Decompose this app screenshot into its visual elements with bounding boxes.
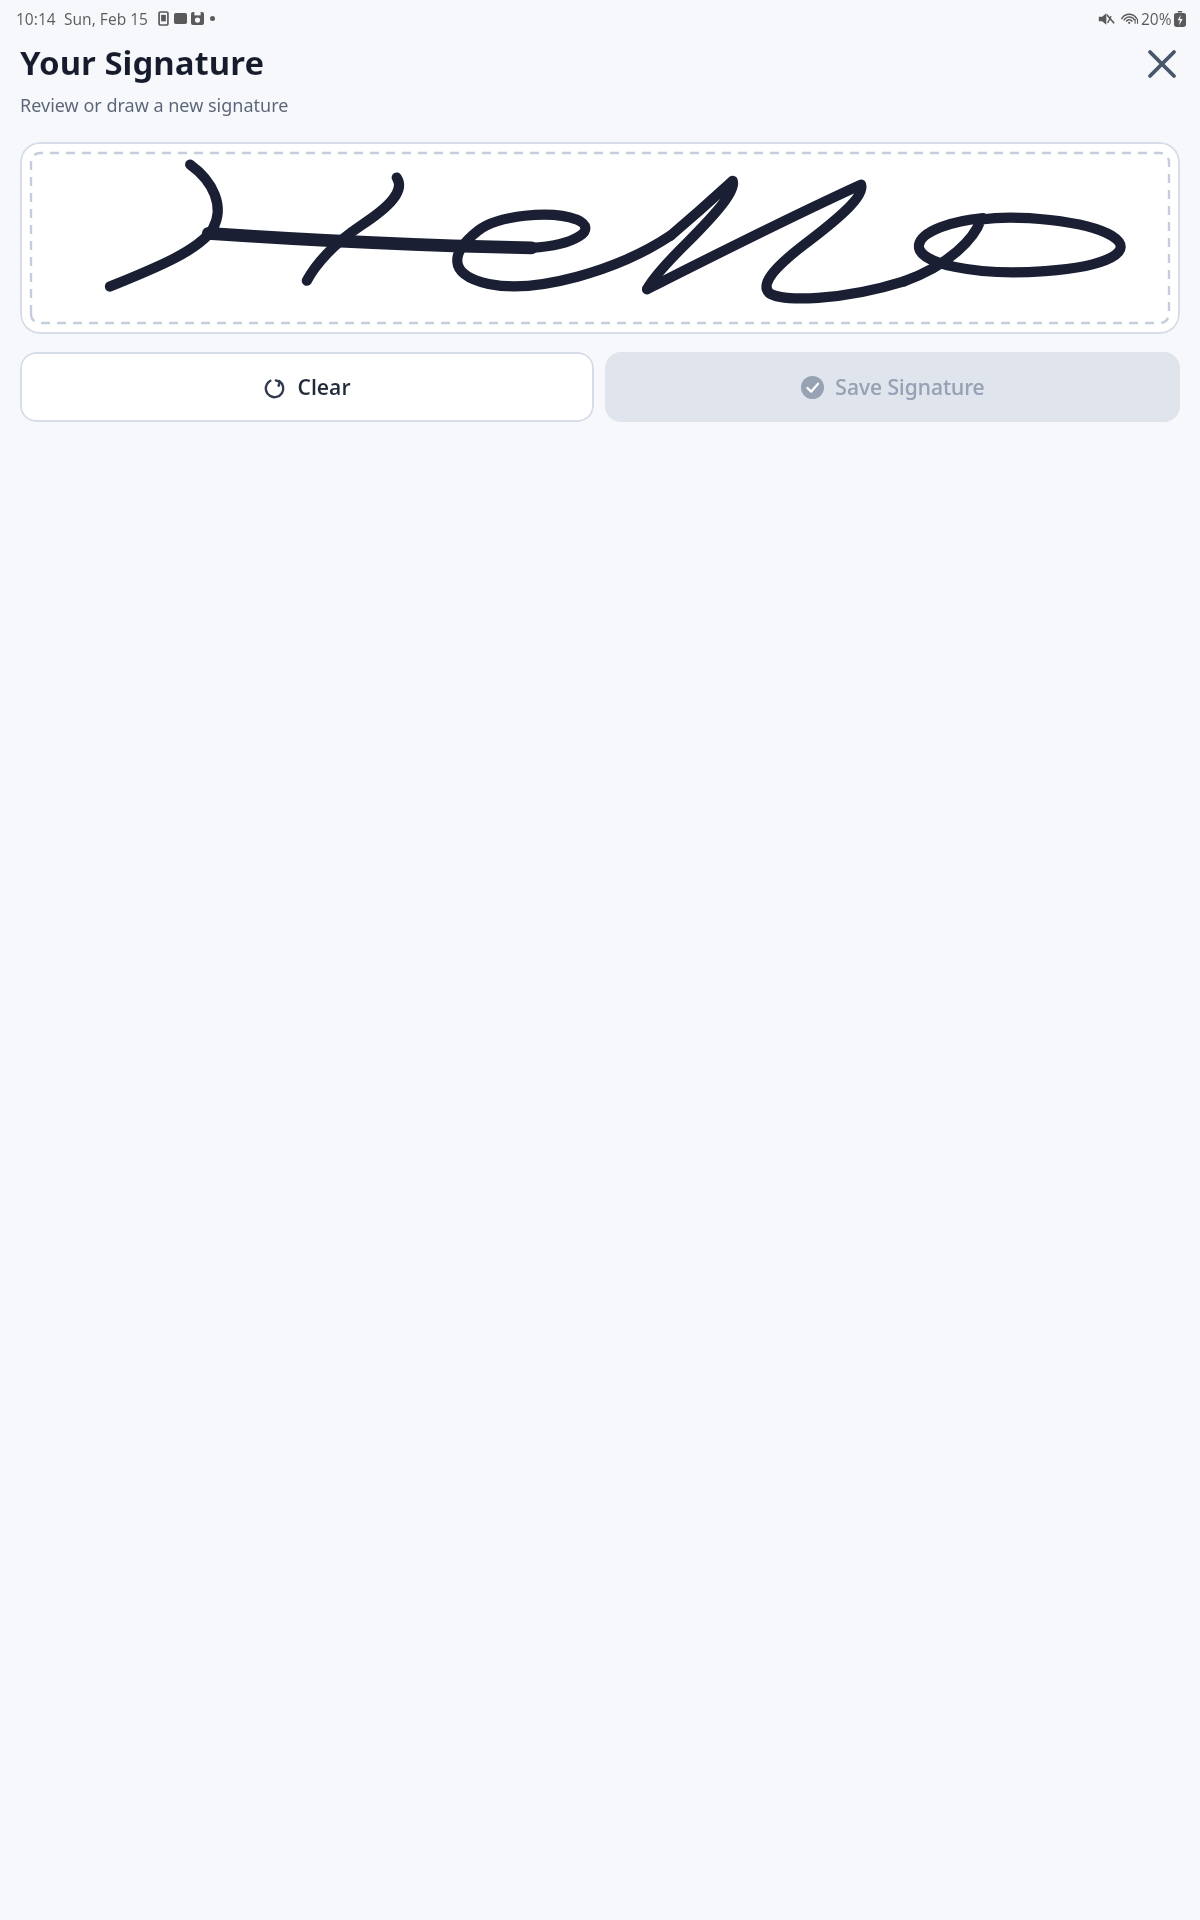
staticText: Sun, Feb 15 bbox=[64, 8, 148, 29]
staticText: Clear bbox=[297, 373, 351, 402]
button[interactable]: Close bbox=[1136, 38, 1188, 90]
button[interactable]: Save Signature bbox=[605, 352, 1180, 422]
button[interactable]: Signature canvas bbox=[20, 142, 1180, 334]
staticText: Save Signature bbox=[835, 373, 985, 402]
button[interactable]: Clear bbox=[20, 352, 594, 422]
staticText: Your Signature bbox=[20, 40, 265, 85]
staticText: 10:14 bbox=[16, 8, 56, 29]
staticText: 20% bbox=[1141, 8, 1172, 29]
staticText: Review or draw a new signature bbox=[20, 93, 289, 118]
